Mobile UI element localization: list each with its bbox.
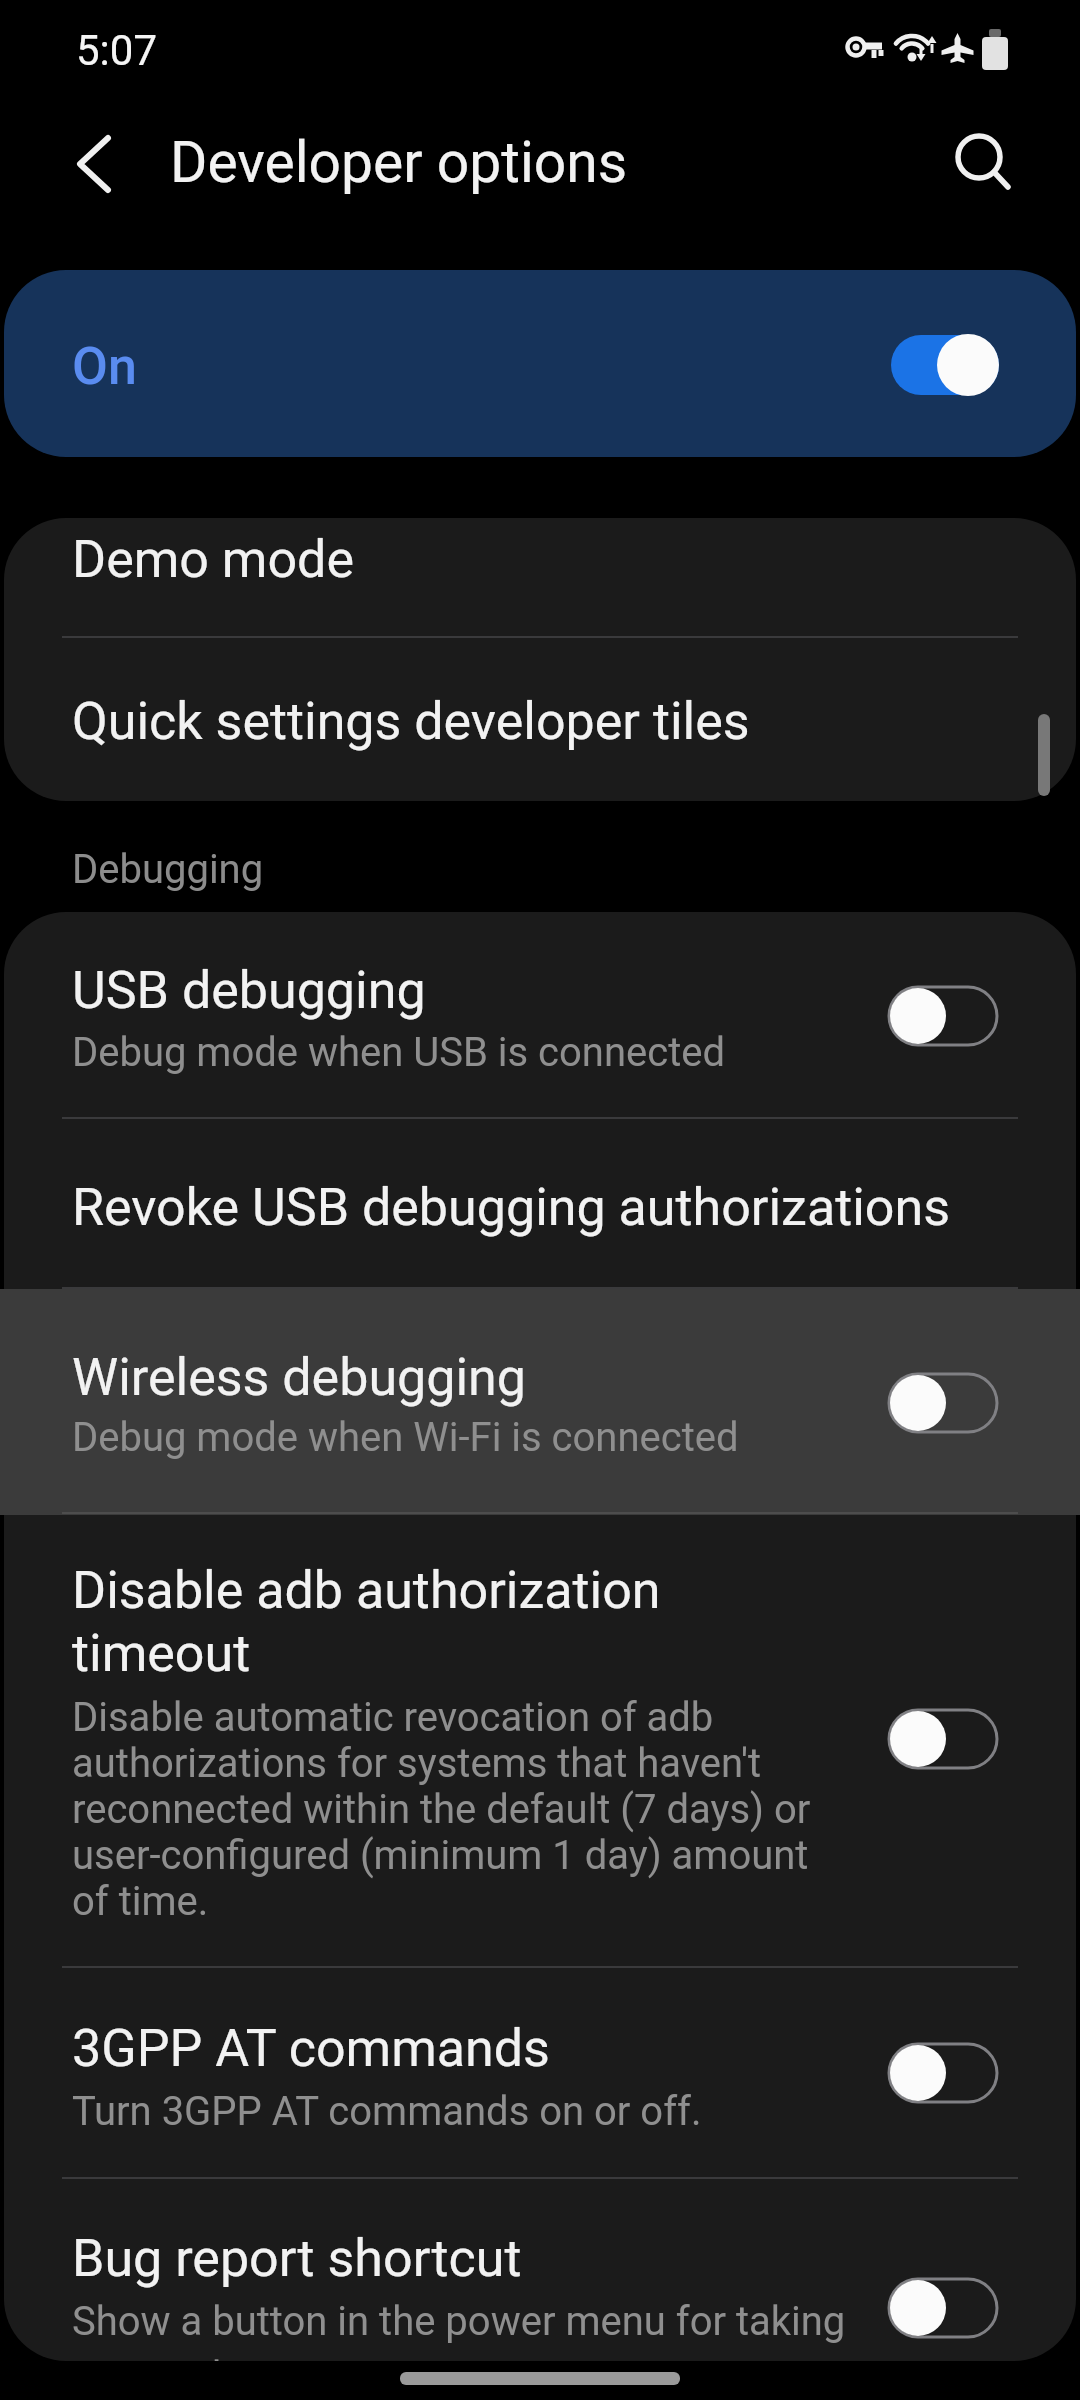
button[interactable]: screenshots. bbox=[5, 2179, 1075, 2361]
button[interactable] bbox=[5, 1515, 1075, 1966]
button[interactable] bbox=[5, 1968, 1075, 2177]
staticText: Wireless debugging bbox=[72, 1347, 527, 1408]
staticText: On bbox=[72, 336, 137, 397]
button[interactable] bbox=[5, 1119, 1075, 1287]
staticText: 3GPP AT commands bbox=[72, 2018, 550, 2079]
staticText: Debugging bbox=[72, 846, 264, 893]
staticText: USB debugging bbox=[72, 960, 426, 1021]
button[interactable] bbox=[883, 2038, 1003, 2108]
button[interactable] bbox=[883, 1368, 1003, 1438]
staticText: Developer options bbox=[170, 129, 628, 196]
button[interactable] bbox=[5, 912, 1075, 1117]
staticText: screenshots. bbox=[72, 2353, 302, 2361]
staticText: Demo mode bbox=[72, 529, 355, 590]
staticText: Bug report shortcut bbox=[72, 2228, 522, 2289]
staticText: Debug mode when Wi-Fi is connected bbox=[72, 1414, 739, 1461]
staticText: Disable automatic revocation of adb auth… bbox=[72, 1694, 811, 1924]
button[interactable] bbox=[4, 270, 1076, 457]
staticText: Show a button in the power menu for taki… bbox=[72, 2298, 846, 2345]
staticText: Revoke USB debugging authorizations bbox=[72, 1177, 951, 1238]
staticText: Debug mode when USB is connected bbox=[72, 1029, 726, 1076]
button[interactable] bbox=[5, 638, 1075, 801]
button[interactable] bbox=[0, 1289, 1080, 1515]
button[interactable] bbox=[948, 127, 1018, 197]
staticText: Turn 3GPP AT commands on or off. bbox=[72, 2088, 702, 2135]
button[interactable] bbox=[885, 330, 1005, 400]
button[interactable] bbox=[883, 1704, 1003, 1774]
button[interactable] bbox=[883, 981, 1003, 1051]
button[interactable] bbox=[70, 134, 118, 194]
button[interactable] bbox=[5, 518, 1075, 637]
staticText: Disable adb authorization timeout bbox=[72, 1560, 661, 1684]
button[interactable] bbox=[883, 2273, 1003, 2343]
staticText: 5:07 bbox=[76, 26, 157, 75]
staticText: Quick settings developer tiles bbox=[72, 691, 750, 752]
